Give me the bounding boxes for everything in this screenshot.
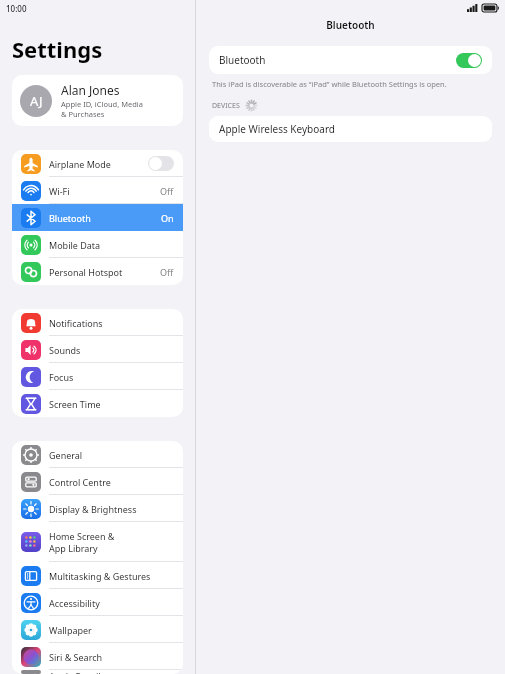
button[interactable]: Wallpaper [12, 616, 183, 643]
button[interactable]: Toggle [148, 156, 174, 171]
button[interactable]: AJ [12, 75, 183, 126]
button[interactable]: Focus [12, 363, 183, 390]
staticText: Apple Pencil [49, 670, 101, 674]
staticText: Sounds [49, 344, 81, 356]
staticText: Bluetooth [49, 212, 91, 224]
staticText: Accessibility [49, 597, 100, 609]
staticText: Apple Wireless Keyboard [219, 122, 335, 136]
button[interactable]: Personal Hotspot [12, 258, 183, 285]
button[interactable]: Multitasking & Gestures [12, 562, 183, 589]
button[interactable]: Control Centre [12, 468, 183, 495]
button[interactable]: Airplane Mode [12, 150, 183, 177]
staticText: Multitasking & Gestures [49, 570, 151, 582]
staticText: Bluetooth [219, 53, 456, 67]
staticText: Apple ID, iCloud, Media [61, 99, 143, 109]
button[interactable]: Mobile Data [12, 231, 183, 258]
staticText: DEVICES [212, 101, 240, 111]
button[interactable]: Siri & Search [12, 643, 183, 670]
staticText: & Purchases [61, 109, 105, 119]
staticText: 10:00 [6, 3, 27, 14]
staticText: Off [160, 266, 174, 278]
staticText: Alan Jones [61, 82, 120, 98]
staticText: On [161, 212, 174, 224]
button[interactable]: Notifications [12, 309, 183, 336]
staticText: This iPad is discoverable as “iPad” whil… [212, 79, 447, 89]
button[interactable]: Accessibility [12, 589, 183, 616]
button[interactable]: Home Screen & [12, 522, 183, 562]
button[interactable]: Sounds [12, 336, 183, 363]
button[interactable]: Toggle [456, 53, 482, 68]
staticText: Settings [12, 34, 103, 64]
button[interactable]: Apple Wireless Keyboard [209, 116, 492, 142]
staticText: Bluetooth [196, 18, 505, 32]
staticText: Personal Hotspot [49, 266, 123, 278]
button[interactable]: Bluetooth [209, 46, 492, 74]
button[interactable]: Wi-Fi [12, 177, 183, 204]
button[interactable]: Screen Time [12, 390, 183, 417]
button[interactable]: General [12, 441, 183, 468]
button[interactable]: Apple Pencil [12, 670, 183, 674]
staticText: Notifications [49, 317, 103, 329]
staticText: Focus [49, 371, 74, 383]
staticText: Screen Time [49, 398, 101, 410]
staticText: Mobile Data [49, 239, 101, 251]
staticText: Display & Brightness [49, 503, 137, 515]
staticText: Wi-Fi [49, 185, 70, 197]
staticText: General [49, 449, 83, 461]
staticText: App Library [49, 542, 98, 554]
button[interactable]: Bluetooth [12, 204, 183, 231]
staticText: Control Centre [49, 476, 111, 488]
staticText: Off [160, 185, 174, 197]
staticText: Wallpaper [49, 624, 92, 636]
staticText: Siri & Search [49, 651, 103, 663]
staticText: Airplane Mode [49, 158, 111, 170]
staticText: Home Screen & [49, 530, 115, 542]
button[interactable]: Display & Brightness [12, 495, 183, 522]
staticText: AJ [30, 92, 43, 110]
